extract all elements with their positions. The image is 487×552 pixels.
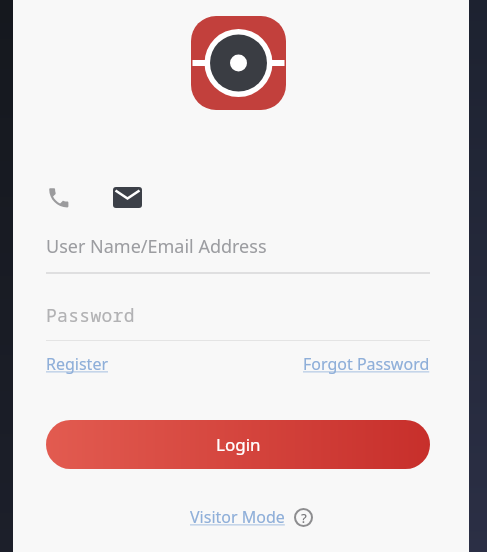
button[interactable]: [113, 187, 142, 208]
staticText: ?: [301, 509, 307, 527]
button[interactable]: User Name/Email Address: [46, 234, 267, 259]
button[interactable]: ?: [294, 508, 313, 527]
button[interactable]: Forgot Password: [303, 353, 430, 375]
button[interactable]: Login: [46, 420, 430, 469]
button[interactable]: Register: [46, 353, 109, 375]
button[interactable]: [46, 185, 70, 209]
staticText: Login: [216, 433, 261, 456]
button[interactable]: Password: [46, 303, 135, 328]
button[interactable]: Visitor Mode: [190, 506, 285, 528]
